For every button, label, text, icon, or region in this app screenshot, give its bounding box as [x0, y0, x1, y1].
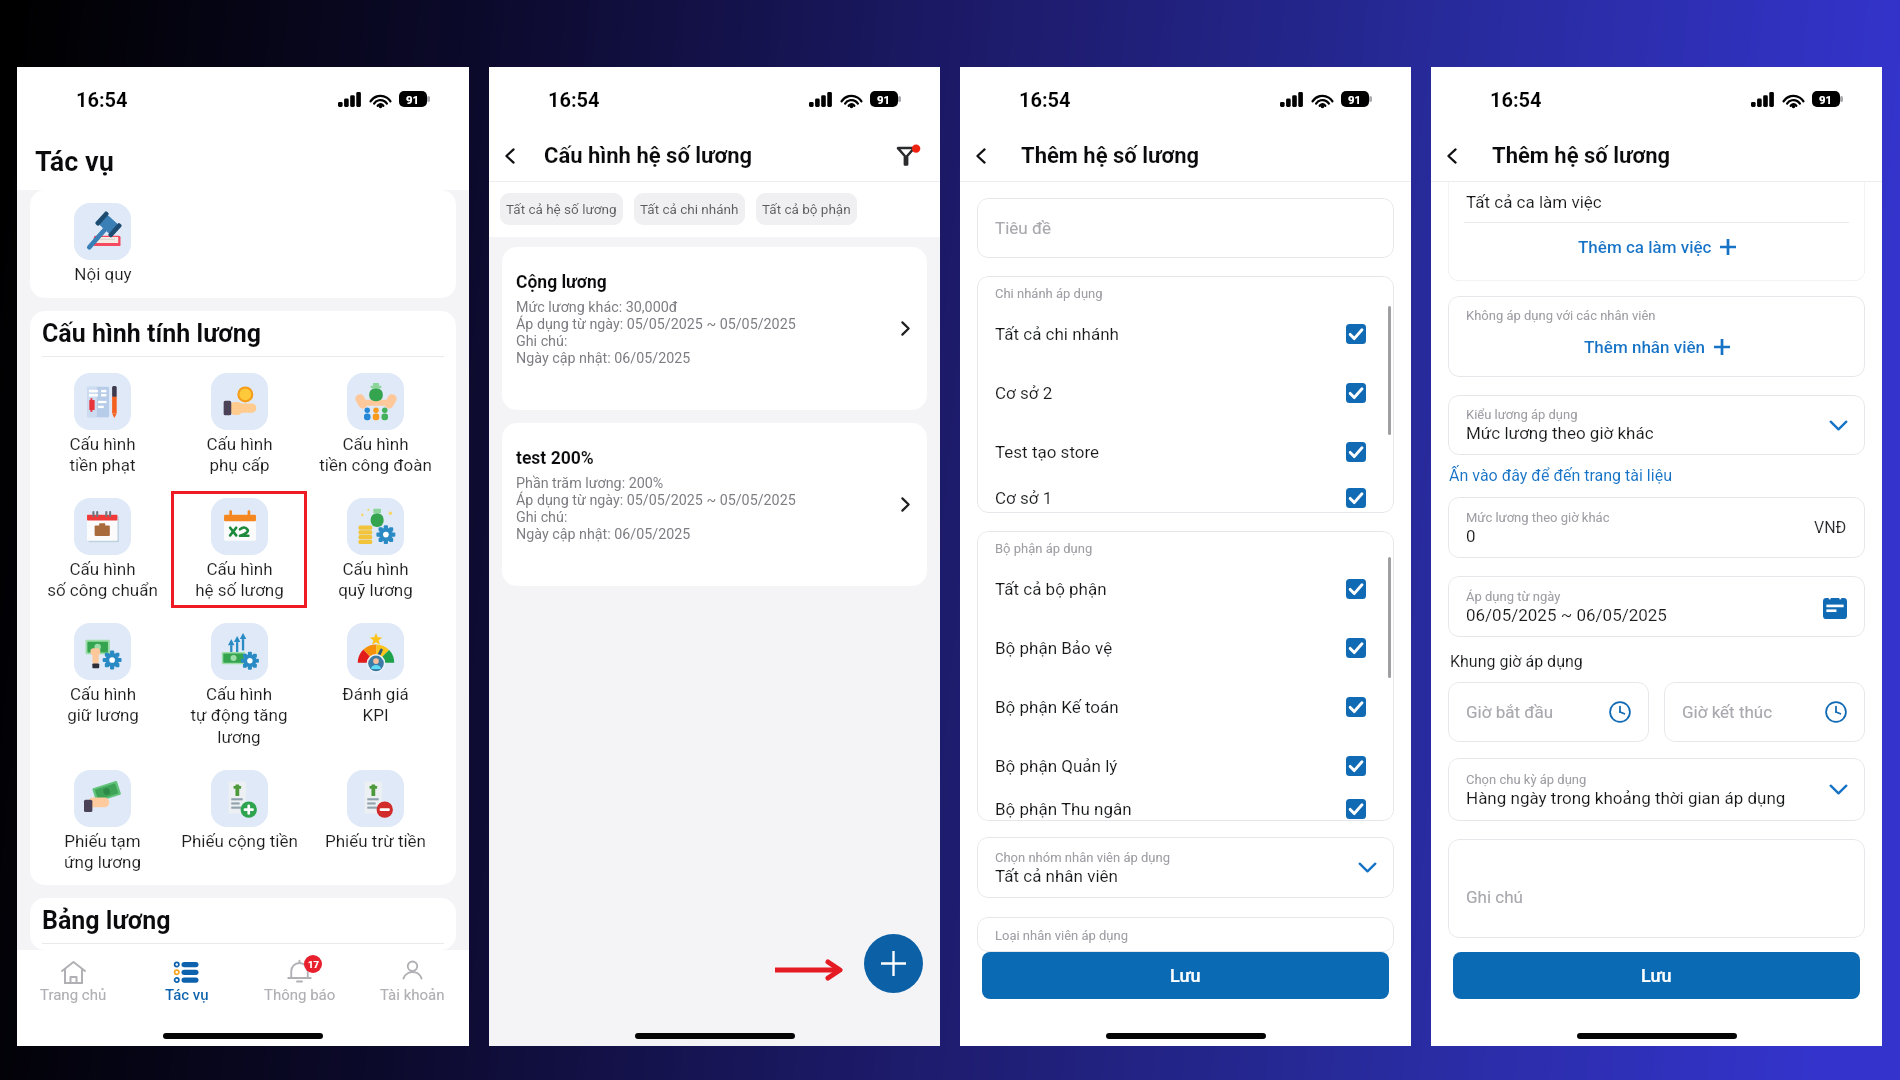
- button[interactable]: Back: [960, 135, 1002, 177]
- staticText: Thêm hệ số lương: [1492, 143, 1671, 169]
- staticText: Nội quy: [74, 264, 132, 284]
- staticText: Cấu hình hệ số lương: [195, 559, 284, 601]
- staticText: Bộ phận Quản lý: [995, 756, 1118, 776]
- staticText: Cấu hình tiền công đoàn: [319, 434, 432, 476]
- staticText: test 200%: [516, 448, 594, 469]
- button[interactable]: Cấu hình tiền phạt: [34, 366, 171, 483]
- staticText: Đánh giá KPI: [342, 684, 409, 726]
- button[interactable]: Add: [864, 934, 923, 993]
- button[interactable]: Bộ phận Thu ngân: [977, 779, 1394, 821]
- button[interactable]: test 200%: [502, 423, 927, 586]
- staticText: Cấu hình giữ lương: [67, 684, 139, 726]
- staticText: Cấu hình tự động tăng lương: [190, 684, 288, 748]
- button[interactable]: Bộ phận Kế toán: [977, 677, 1394, 736]
- staticText: Thêm hệ số lương: [1021, 143, 1200, 169]
- button[interactable]: Cấu hình hệ số lương: [171, 491, 307, 608]
- staticText: Tất cả bộ phận: [995, 579, 1107, 599]
- staticText: Lưu: [1170, 965, 1201, 986]
- button[interactable]: Tác vụ: [130, 950, 243, 1033]
- staticText: Loại nhân viên áp dụng: [995, 928, 1129, 943]
- staticText: Tất cả hệ số lương: [506, 201, 617, 217]
- staticText: Thêm ca làm việc: [1578, 237, 1712, 257]
- button[interactable]: Thêm ca làm việc: [1448, 223, 1865, 270]
- staticText: Phần trăm lương: 200%: [516, 475, 664, 492]
- button[interactable]: Tất cả bộ phận: [977, 559, 1394, 618]
- staticText: Cộng lương: [516, 272, 607, 293]
- button[interactable]: Phiếu cộng tiền: [171, 763, 307, 858]
- staticText: Phiếu cộng tiền: [181, 831, 298, 851]
- staticText: Tác vụ: [35, 146, 114, 178]
- staticText: Không áp dụng với các nhân viên: [1466, 308, 1656, 323]
- button[interactable]: Cơ sở 2: [977, 363, 1394, 422]
- staticText: Test tạo store: [995, 442, 1100, 462]
- staticText: Tài khoản: [380, 986, 445, 1004]
- staticText: Cơ sở 2: [995, 383, 1053, 403]
- staticText: Bộ phận áp dụng: [995, 541, 1093, 556]
- button[interactable]: Bộ phận Bảo vệ: [977, 618, 1394, 677]
- staticText: Tất cả nhân viên: [995, 866, 1118, 886]
- button[interactable]: Đánh giá KPI: [307, 616, 443, 733]
- staticText: Chi nhánh áp dụng: [995, 286, 1103, 301]
- button[interactable]: Filter: [886, 136, 926, 176]
- button[interactable]: Tài khoản: [356, 950, 469, 1033]
- button[interactable]: Bộ phận Quản lý: [977, 736, 1394, 795]
- staticText: Ghi chú:: [516, 509, 568, 526]
- staticText: Giờ bắt đầu: [1466, 702, 1554, 722]
- button[interactable]: Cơ sở 1: [977, 468, 1394, 513]
- button[interactable]: Lưu: [982, 952, 1389, 999]
- staticText: Cơ sở 1: [995, 488, 1053, 508]
- button[interactable]: Phiếu trừ tiền: [307, 763, 443, 858]
- staticText: 17: [308, 959, 319, 970]
- button[interactable]: 17: [243, 950, 356, 1033]
- staticText: Cấu hình quỹ lương: [338, 559, 413, 601]
- button[interactable]: Test tạo store: [977, 422, 1394, 481]
- staticText: 16:54: [548, 88, 600, 111]
- button[interactable]: Cấu hình phụ cấp: [171, 366, 307, 483]
- staticText: Trang chủ: [40, 986, 107, 1004]
- staticText: Chọn chu kỳ áp dụng: [1466, 772, 1587, 787]
- button[interactable]: Phiếu tạm ứng lương: [34, 763, 171, 880]
- button[interactable]: Tất cả chi nhánh: [977, 304, 1394, 363]
- staticText: 0: [1466, 526, 1476, 546]
- staticText: Ghi chú: [1466, 887, 1523, 907]
- staticText: 91: [1348, 93, 1362, 106]
- button[interactable]: Back: [489, 135, 531, 177]
- staticText: Bộ phận Kế toán: [995, 697, 1119, 717]
- button[interactable]: Cấu hình số công chuẩn: [34, 491, 171, 608]
- button[interactable]: Tất cả chi nhánh: [634, 193, 745, 225]
- button[interactable]: Cấu hình tự động tăng lương: [171, 616, 307, 755]
- button[interactable]: Cấu hình tiền công đoàn: [307, 366, 443, 483]
- button[interactable]: Lưu: [1453, 952, 1860, 999]
- button[interactable]: Nội quy: [65, 203, 140, 284]
- button[interactable]: Giờ kết thúc: [1664, 682, 1865, 742]
- staticText: 91: [1819, 93, 1833, 106]
- button[interactable]: Ấn vào đây để đến trang tài liệu: [1449, 466, 1672, 485]
- staticText: Tất cả bộ phận: [762, 201, 851, 217]
- staticText: Chọn nhóm nhân viên áp dụng: [995, 850, 1170, 865]
- staticText: Hàng ngày trong khoảng thời gian áp dụng: [1466, 788, 1786, 808]
- staticText: Cấu hình tính lương: [42, 319, 262, 348]
- staticText: Áp dụng từ ngày: [1466, 589, 1561, 604]
- staticText: Kiểu lương áp dụng: [1466, 407, 1578, 422]
- button[interactable]: Tất cả bộ phận: [756, 193, 857, 225]
- staticText: Bộ phận Bảo vệ: [995, 638, 1113, 658]
- button[interactable]: Giờ bắt đầu: [1448, 682, 1649, 742]
- staticText: Giờ kết thúc: [1682, 702, 1773, 722]
- staticText: Cấu hình phụ cấp: [206, 434, 273, 476]
- staticText: Tác vụ: [165, 986, 209, 1004]
- button[interactable]: Cộng lương: [502, 247, 927, 410]
- staticText: Phiếu trừ tiền: [325, 831, 426, 851]
- button[interactable]: Trang chủ: [17, 950, 130, 1033]
- staticText: Mức lương theo giờ khác: [1466, 510, 1610, 525]
- staticText: Tất cả chi nhánh: [995, 324, 1119, 344]
- button[interactable]: Cấu hình quỹ lương: [307, 491, 443, 608]
- staticText: Bảng lương: [42, 906, 171, 935]
- button[interactable]: Back: [1431, 135, 1473, 177]
- staticText: 16:54: [1490, 88, 1542, 111]
- button[interactable]: Tất cả hệ số lương: [500, 193, 623, 225]
- button[interactable]: Thêm nhân viên: [1448, 323, 1865, 370]
- staticText: Tiêu đề: [995, 218, 1052, 238]
- staticText: 16:54: [76, 88, 128, 111]
- button[interactable]: Cấu hình giữ lương: [34, 616, 171, 733]
- staticText: Mức lương theo giờ khác: [1466, 423, 1654, 443]
